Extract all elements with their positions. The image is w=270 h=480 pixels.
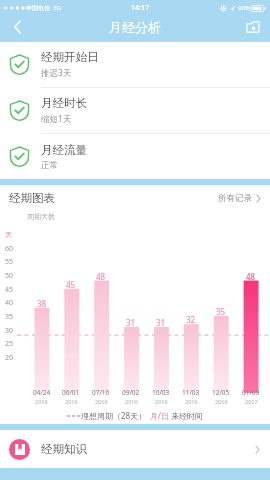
staticText: 31 <box>156 317 166 328</box>
button[interactable]: Back <box>0 16 34 38</box>
staticText: 月经流量 <box>41 143 87 157</box>
staticText: 经期图表 <box>9 191 55 205</box>
staticText: 38 <box>37 298 47 309</box>
staticText: 04/24 <box>33 388 51 397</box>
staticText: 14:17 <box>131 3 149 13</box>
staticText: 月经分析 <box>109 19 161 35</box>
staticText: 10/03 <box>152 388 170 397</box>
staticText: 理想周期（28天） <box>81 410 147 421</box>
staticText: 60 <box>5 244 14 254</box>
button[interactable]: 月经流量 <box>0 134 270 179</box>
staticText: 月经时长 <box>41 96 87 110</box>
staticText: 缩短1天 <box>41 113 72 125</box>
staticText: 40 <box>5 298 14 308</box>
staticText: 90% <box>238 4 250 12</box>
staticText: 经期开始日 <box>41 50 99 64</box>
staticText: 25 <box>5 339 14 349</box>
staticText: 月/日 <box>150 410 169 421</box>
staticText: 2016 <box>35 398 48 405</box>
staticText: 11/03 <box>182 388 200 397</box>
staticText: 09/02 <box>122 388 140 397</box>
staticText: 来经时间 <box>171 411 203 421</box>
staticText: 31 <box>126 317 136 328</box>
button[interactable]: Records <box>236 16 270 38</box>
staticText: 07/16 <box>92 388 110 397</box>
staticText: 2017 <box>245 398 258 405</box>
staticText: 32 <box>186 314 196 325</box>
staticText: 周期天数 <box>27 212 55 221</box>
staticText: 2016 <box>95 398 108 405</box>
staticText: 35 <box>216 306 226 317</box>
button[interactable]: 月经时长 <box>0 88 270 134</box>
staticText: 45 <box>5 285 14 295</box>
staticText: 12/05 <box>212 388 230 397</box>
staticText: 50 <box>5 271 14 281</box>
staticText: 06/01 <box>62 388 80 397</box>
staticText: 经期知识 <box>41 442 87 456</box>
button[interactable]: 经期知识 <box>0 430 270 468</box>
staticText: 48 <box>246 271 256 282</box>
staticText: 2016 <box>65 398 78 405</box>
button[interactable]: 经期开始日 <box>0 42 270 88</box>
button[interactable]: 经期图表 <box>0 185 270 211</box>
staticText: 48 <box>96 271 106 282</box>
staticText: 01/09 <box>242 388 260 397</box>
staticText: 2016 <box>185 398 198 405</box>
staticText: 2016 <box>125 398 138 405</box>
staticText: 30 <box>5 326 14 336</box>
staticText: 2016 <box>155 398 168 405</box>
staticText: 3G <box>53 4 61 12</box>
staticText: 20 <box>5 353 14 363</box>
staticText: 推迟3天 <box>41 67 72 79</box>
staticText: 所有记录 <box>218 193 252 204</box>
staticText: 45 <box>66 279 76 290</box>
staticText: 天 <box>5 230 12 239</box>
staticText: 中国电信 <box>26 4 50 12</box>
staticText: 55 <box>5 257 14 267</box>
staticText: 正常 <box>41 160 58 171</box>
staticText: 2016 <box>215 398 228 405</box>
staticText: 35 <box>5 312 14 322</box>
